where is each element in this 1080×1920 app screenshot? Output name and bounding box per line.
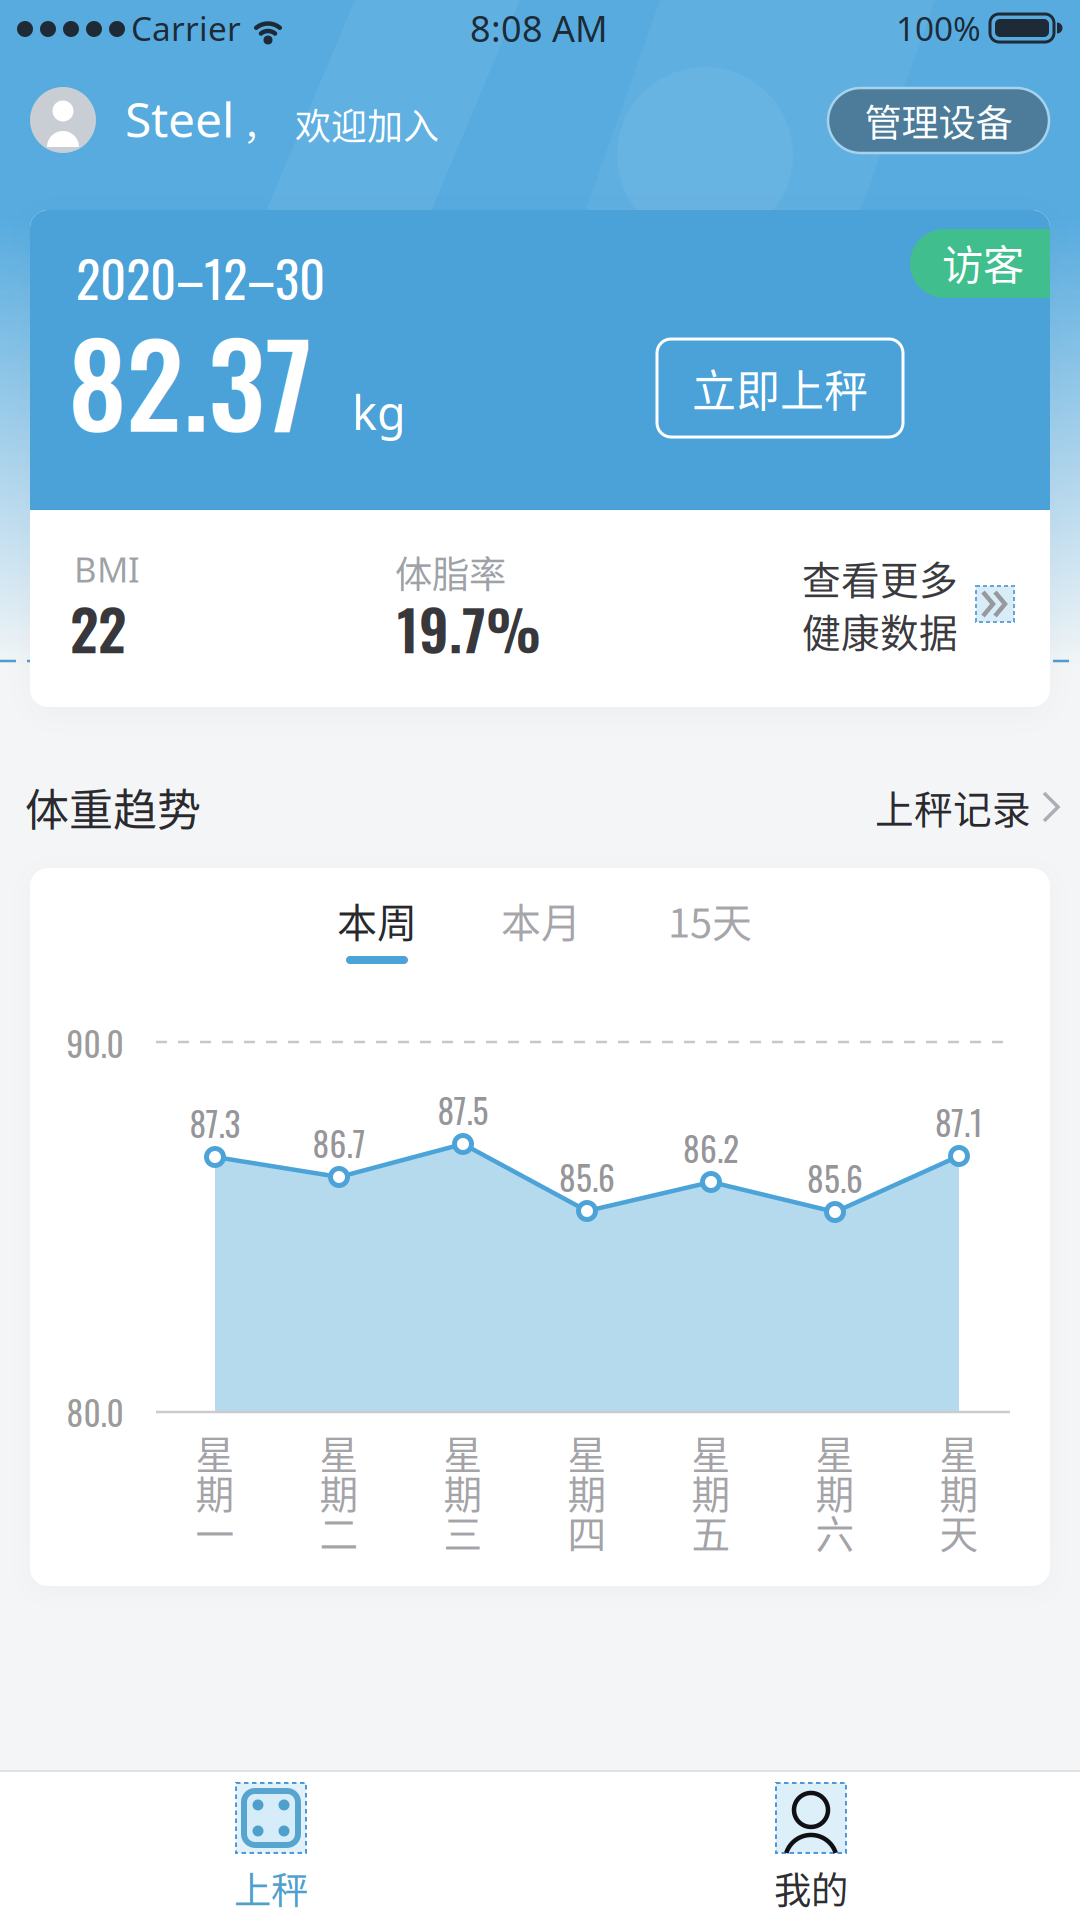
staticText: 星 期 天	[939, 1432, 978, 1552]
staticText: 星 期 五	[691, 1432, 730, 1552]
staticText: 87.5	[437, 1085, 488, 1135]
button[interactable]: 上秤记录	[875, 779, 1061, 835]
staticText: 2020–12–30	[76, 239, 325, 315]
staticText: 星 期 一	[195, 1432, 234, 1552]
staticText: 22	[70, 586, 126, 669]
staticText: 85.6	[559, 1152, 615, 1202]
staticText: 82.37	[68, 295, 312, 465]
staticText: BMI	[74, 545, 140, 593]
staticText: 访客	[942, 232, 1024, 292]
staticText: 86.7	[312, 1118, 365, 1168]
staticText: 8:08 AM	[470, 3, 608, 52]
staticText: 上秤	[234, 1861, 308, 1915]
button[interactable]: 本月	[501, 891, 581, 949]
staticText: 星 期 六	[815, 1432, 854, 1552]
staticText: 85.6	[807, 1153, 863, 1203]
staticText: 立即上秤	[692, 356, 868, 420]
button[interactable]: 本周	[337, 891, 417, 949]
button[interactable]: 我的	[774, 1783, 848, 1915]
staticText: 我的	[774, 1861, 848, 1915]
staticText: 15天	[668, 891, 752, 949]
staticText: 86.2	[683, 1123, 739, 1173]
staticText: 80.0	[66, 1387, 123, 1437]
staticText: Carrier	[131, 5, 241, 51]
staticText: 上秤记录	[875, 779, 1031, 835]
staticText: 星 期 四	[567, 1432, 606, 1552]
staticText: 本周	[337, 891, 417, 949]
button[interactable]: 15天	[668, 891, 752, 949]
staticText: 87.3	[189, 1098, 240, 1148]
staticText: Steel	[125, 86, 234, 152]
staticText: 87.1	[935, 1097, 983, 1147]
staticText: 体重趋势	[25, 775, 201, 839]
staticText: 星 期 二	[319, 1432, 358, 1552]
button[interactable]: 立即上秤	[657, 339, 903, 437]
button[interactable]: 上秤	[234, 1783, 308, 1915]
staticText: 管理设备	[864, 93, 1012, 148]
button[interactable]: 查看更多 健康数据	[802, 551, 1014, 657]
staticText: 星 期 三	[443, 1432, 482, 1552]
staticText: 90.0	[66, 1018, 123, 1068]
staticText: 19.7%	[397, 586, 541, 669]
staticText: 100%	[896, 5, 981, 51]
staticText: 查看更多 健康数据	[802, 551, 958, 657]
staticText: kg	[352, 380, 406, 444]
staticText: ， 欢迎加入	[243, 98, 439, 150]
staticText: 本月	[501, 891, 581, 949]
staticText: 体脂率	[395, 545, 506, 599]
button[interactable]: 管理设备	[828, 88, 1049, 153]
